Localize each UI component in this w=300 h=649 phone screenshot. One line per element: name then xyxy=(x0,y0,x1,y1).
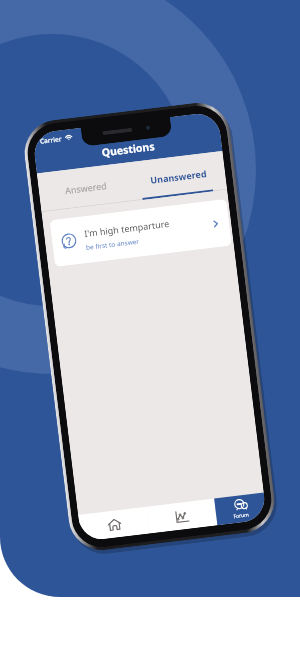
staticText: Questions xyxy=(101,139,156,159)
staticText: I'm high temparture xyxy=(84,217,170,239)
staticText: be first to answer xyxy=(85,237,140,252)
button[interactable]: Unanswered xyxy=(129,151,227,201)
staticText: Unanswered xyxy=(150,167,208,186)
button[interactable]: I'm high temparture xyxy=(49,199,232,267)
button[interactable]: Home xyxy=(78,507,150,542)
staticText: Answered xyxy=(64,179,107,196)
staticText: Carrier xyxy=(39,134,62,146)
button[interactable]: Forum xyxy=(214,492,267,525)
staticText: Forum xyxy=(233,511,250,520)
button[interactable]: Statistics xyxy=(147,498,217,533)
button[interactable]: Answered xyxy=(37,162,134,212)
